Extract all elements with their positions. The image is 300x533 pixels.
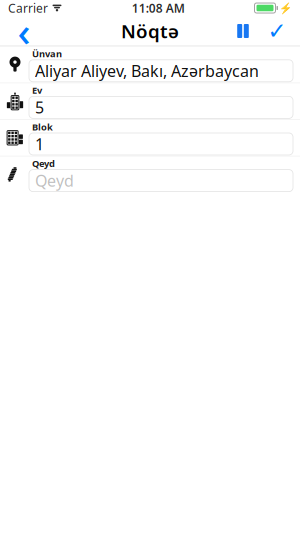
staticText: 5 [35,97,44,118]
button[interactable]: Back [4,16,44,46]
staticText: Nöqtə [121,19,179,43]
button[interactable]: Save [260,16,294,46]
staticText: Qeyd [35,170,74,191]
staticText: ⚡ [279,2,292,14]
staticText: Ünvan [32,47,62,60]
staticText: ‹ [17,4,30,57]
staticText: Qeyd [32,157,55,170]
staticText: Carrier [8,0,48,16]
staticText: ✓ [267,18,286,44]
staticText: 1 [35,133,44,155]
staticText: 11:08 AM [132,0,185,16]
staticText: Aliyar Aliyev, Bakı, Azərbaycan [35,60,259,81]
button[interactable]: Show map [226,16,260,46]
staticText: Blok [32,121,53,133]
staticText: Ev [32,84,42,96]
